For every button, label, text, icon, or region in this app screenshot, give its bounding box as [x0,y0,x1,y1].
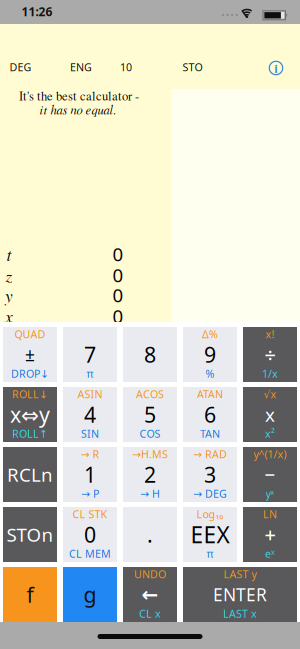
button[interactable]: f [3,567,57,622]
button[interactable]: x! ÷ [243,327,297,382]
button[interactable]: STOn [3,507,57,562]
staticText: STO [182,60,202,74]
staticText: CL MEM [69,546,111,561]
staticText: x! [265,327,274,341]
staticText: 8 [144,340,156,369]
staticText: x⇔y [10,400,50,429]
button[interactable]: Backspace [123,567,177,622]
staticText: → H [140,486,160,501]
staticText: ENTER [213,583,267,606]
staticText: EEX [190,519,229,549]
staticText: ROLL↑ [12,426,48,441]
staticText: x [265,402,275,427]
staticText: QUAD [14,327,45,341]
staticText: yˣ [265,486,274,501]
staticText: Δ% [202,327,218,341]
staticText: 4 [84,400,96,429]
staticText: 5 [144,400,156,429]
button[interactable]: Log₁₀ EEX [183,507,237,562]
button[interactable]: Info [267,59,285,77]
staticText: π [86,366,93,381]
staticText: i [274,60,277,76]
button[interactable]: RCLn [3,447,57,502]
button[interactable]: . [123,507,177,562]
staticText: z [5,263,12,287]
button[interactable]: ROLL↓ x⇔y [3,387,57,442]
staticText: 2 [144,460,156,489]
staticText: it has no equal. [39,101,116,118]
staticText: LAST y [223,567,256,581]
staticText: 9 [204,340,216,369]
button[interactable]: √x x [243,387,297,442]
staticText: x² [265,426,275,441]
staticText: g [83,580,96,609]
staticText: → R [80,447,99,461]
staticText: 0 [112,304,123,328]
staticText: CL STK [72,507,107,521]
staticText: UNDO [134,567,166,581]
staticText: 10 [120,60,132,74]
button[interactable]: ASIN 4 [63,387,117,442]
staticText: LN [263,507,277,521]
staticText: 3 [204,460,216,489]
staticText: RCLn [7,462,53,487]
staticText: It's the best calculator - [19,87,139,104]
staticText: ± [25,343,35,366]
staticText: → P [81,486,99,501]
staticText: + [264,521,275,548]
staticText: 7 [84,340,96,369]
button[interactable]: → RAD 3 [183,447,237,502]
staticText: 6 [204,400,216,429]
staticText: SIN [81,426,99,441]
staticText: 0 [84,520,96,549]
staticText: TAN [200,426,220,441]
button[interactable]: → R 1 [63,447,117,502]
staticText: Log₁₀ [196,507,223,521]
button[interactable]: CL STK 0 [63,507,117,562]
staticText: ATAN [197,387,223,401]
button[interactable]: ACOS 5 [123,387,177,442]
staticText: π [206,546,213,561]
staticText: eˣ [265,546,275,561]
staticText: ÷ [264,341,275,368]
button[interactable]: ATAN 6 [183,387,237,442]
staticText: y^(1/x) [253,447,286,461]
staticText: LAST x [223,606,257,621]
button[interactable]: y^(1/x) − [243,447,297,502]
staticText: . [147,520,153,549]
button[interactable]: g [63,567,117,622]
staticText: STOn [6,522,53,547]
staticText: 1/x [262,366,278,381]
staticText: DEG [9,60,31,74]
button[interactable]: LN + [243,507,297,562]
button[interactable]: Δ% 9 [183,327,237,382]
staticText: 11:26 [21,3,52,19]
staticText: ACOS [136,387,164,401]
staticText: 0 [112,242,123,266]
staticText: → RAD [193,447,227,461]
staticText: 1 [84,460,96,489]
staticText: ENG [70,60,92,74]
staticText: ← [141,583,158,606]
staticText: ASIN [77,387,102,401]
staticText: CL x [139,606,161,621]
button[interactable]: 7 [63,327,117,382]
button[interactable]: LAST y ENTER [183,567,297,622]
staticText: y [5,283,13,307]
button[interactable]: 8 [123,327,177,382]
staticText: →H.MS [132,447,168,461]
staticText: ROLL↓ [12,387,48,401]
staticText: DROP↓ [11,366,49,381]
staticText: 0 [112,283,123,307]
button[interactable]: QUAD ± [3,327,57,382]
staticText: x [5,304,13,328]
staticText: COS [139,426,160,441]
staticText: 0 [112,263,123,287]
staticText: √x [263,387,276,401]
button[interactable]: →H.MS 2 [123,447,177,502]
staticText: f [26,580,33,609]
staticText: % [205,366,214,381]
staticText: → DEG [193,486,227,501]
staticText: − [264,462,275,487]
staticText: t [6,242,11,266]
